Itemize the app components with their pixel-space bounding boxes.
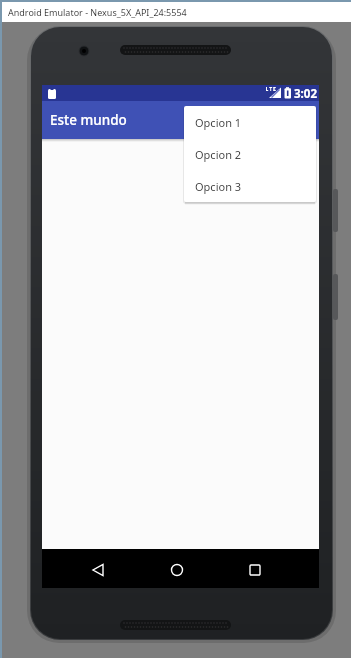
staticText: Opcion 1: [195, 115, 242, 130]
staticText: Opcion 2: [195, 147, 242, 162]
button[interactable]: Opcion 3: [184, 170, 316, 202]
button[interactable]: [80, 552, 116, 586]
button[interactable]: Opcion 2: [184, 138, 316, 170]
staticText: 3:02: [294, 86, 317, 102]
staticText: Android Emulator - Nexus_5X_API_24:5554: [8, 6, 187, 18]
staticText: Este mundo: [50, 111, 127, 129]
button[interactable]: Opcion 1: [184, 106, 316, 138]
button[interactable]: [159, 552, 195, 586]
staticText: Opcion 3: [195, 179, 242, 194]
button[interactable]: [237, 552, 273, 586]
